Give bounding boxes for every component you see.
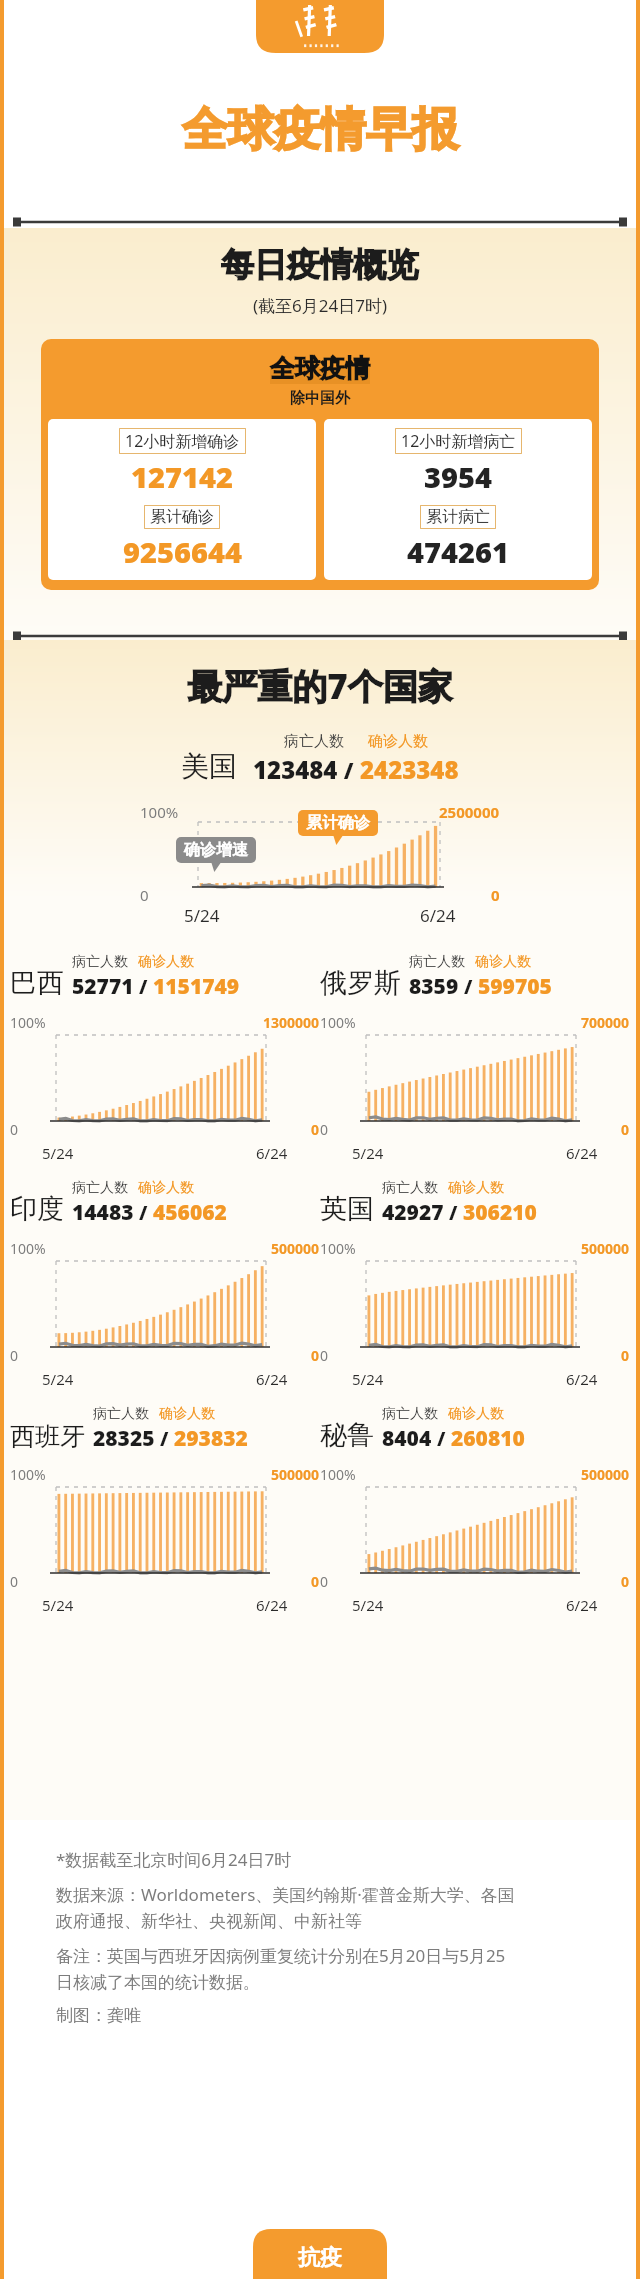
staticText: 3954 xyxy=(424,457,492,496)
staticText: 5/24 xyxy=(42,1595,74,1615)
staticText: / xyxy=(338,755,360,785)
staticText: 病亡人数 xyxy=(382,1405,438,1423)
staticText: 病亡人数 xyxy=(72,1179,128,1197)
staticText: / xyxy=(134,1200,153,1226)
staticText: 0 xyxy=(621,1120,630,1139)
staticText: 西班牙 xyxy=(10,1421,85,1452)
button[interactable]: 英国 xyxy=(320,1179,630,1389)
staticText: 500000 xyxy=(581,1465,630,1484)
staticText: 0 xyxy=(311,1120,320,1139)
staticText: 0 xyxy=(320,1572,329,1591)
staticText: 病亡人数 xyxy=(72,953,128,971)
staticText: 0 xyxy=(311,1346,320,1365)
staticText: 100% xyxy=(10,1013,46,1032)
staticText: 5/24 xyxy=(352,1369,384,1389)
staticText: 英国 xyxy=(320,1192,374,1226)
staticText: 确诊人数 xyxy=(448,1179,504,1197)
staticText: 病亡人数 xyxy=(284,732,344,751)
staticText: *数据截至北京时间6月24日7时 xyxy=(56,1848,292,1871)
staticText: 0 xyxy=(320,1120,329,1139)
staticText: 6/24 xyxy=(256,1143,288,1163)
staticText: 2500000 xyxy=(439,802,500,822)
staticText: 100% xyxy=(320,1465,356,1484)
staticText: 474261 xyxy=(407,532,509,571)
staticText: 8404 xyxy=(382,1424,432,1453)
staticText: 巴西 xyxy=(10,966,64,1000)
staticText: 0 xyxy=(621,1572,630,1591)
staticText: 美国 xyxy=(181,749,237,784)
staticText: 制图：龚唯 xyxy=(56,2005,141,2026)
staticText: 500000 xyxy=(581,1239,630,1258)
staticText: 1151749 xyxy=(153,972,240,1001)
staticText: 42927 xyxy=(382,1198,444,1227)
staticText: 每日疫情概览 xyxy=(0,244,640,286)
staticText: 6/24 xyxy=(420,904,456,927)
button[interactable]: The Paper logo xyxy=(256,0,384,53)
button[interactable]: 12小时新增病亡 xyxy=(324,419,592,580)
staticText: 0 xyxy=(311,1572,320,1591)
staticText: 5/24 xyxy=(42,1369,74,1389)
staticText: 293832 xyxy=(174,1424,248,1453)
staticText: 累计病亡 xyxy=(426,507,490,527)
button[interactable]: 秘鲁 xyxy=(320,1405,630,1615)
staticText: 5/24 xyxy=(184,904,220,927)
staticText: 500000 xyxy=(271,1465,320,1484)
staticText: 5/24 xyxy=(42,1143,74,1163)
staticText: 0 xyxy=(10,1120,19,1139)
staticText: 100% xyxy=(10,1239,46,1258)
staticText: 28325 xyxy=(93,1424,155,1453)
staticText: 病亡人数 xyxy=(409,953,465,971)
staticText: 印度 xyxy=(10,1192,64,1226)
staticText: 6/24 xyxy=(256,1369,288,1389)
staticText: 12小时新增病亡 xyxy=(401,430,516,452)
staticText: 确诊人数 xyxy=(138,1179,194,1197)
staticText: 病亡人数 xyxy=(382,1179,438,1197)
staticText: 6/24 xyxy=(256,1595,288,1615)
staticText: / xyxy=(134,974,153,1000)
staticText: 6/24 xyxy=(566,1143,598,1163)
staticText: / xyxy=(444,1200,463,1226)
staticText: 306210 xyxy=(463,1198,537,1227)
staticText: 全球疫情 xyxy=(270,353,370,384)
staticText: 456062 xyxy=(153,1198,227,1227)
staticText: 123484 xyxy=(253,753,338,786)
staticText: / xyxy=(155,1426,174,1452)
staticText: 52771 xyxy=(72,972,134,1001)
staticText: 0 xyxy=(10,1572,19,1591)
staticText: 数据来源：Worldometers、美国约翰斯·霍普金斯大学、各国 政府通报、新… xyxy=(56,1883,515,1932)
staticText: 0 xyxy=(491,885,500,905)
staticText: 累计确诊 xyxy=(150,507,214,527)
button[interactable]: 抗疫 xyxy=(253,2229,387,2279)
button[interactable]: 12小时新增确诊 xyxy=(48,419,316,580)
staticText: 0 xyxy=(320,1346,329,1365)
staticText: 抗疫 xyxy=(298,2244,342,2272)
staticText: 127142 xyxy=(131,457,233,496)
staticText: 8359 xyxy=(409,972,459,1001)
button[interactable]: 印度 xyxy=(10,1179,320,1389)
staticText: / xyxy=(432,1426,451,1452)
staticText: 100% xyxy=(10,1465,46,1484)
staticText: 6/24 xyxy=(566,1369,598,1389)
staticText: 确诊人数 xyxy=(138,953,194,971)
staticText: 秘鲁 xyxy=(320,1418,374,1452)
staticText: 最严重的7个国家 xyxy=(0,662,640,710)
staticText: 确诊人数 xyxy=(475,953,531,971)
staticText: 0 xyxy=(10,1346,19,1365)
button[interactable]: 俄罗斯 xyxy=(320,953,630,1163)
staticText: 0 xyxy=(621,1346,630,1365)
staticText: 确诊人数 xyxy=(368,732,428,751)
staticText: 100% xyxy=(320,1239,356,1258)
staticText: 病亡人数 xyxy=(93,1405,149,1423)
staticText: 备注：英国与西班牙因病例重复统计分别在5月20日与5月25 日核减了本国的统计数… xyxy=(56,1944,506,1993)
staticText: 0 xyxy=(140,885,149,905)
staticText: 700000 xyxy=(581,1013,630,1032)
staticText: (截至6月24日7时) xyxy=(0,294,640,317)
staticText: / xyxy=(459,974,478,1000)
button[interactable]: 巴西 xyxy=(10,953,320,1163)
staticText: 1300000 xyxy=(263,1013,320,1032)
staticText: 5/24 xyxy=(352,1595,384,1615)
staticText: 俄罗斯 xyxy=(320,966,401,1000)
button[interactable]: 西班牙 xyxy=(10,1405,320,1615)
button[interactable]: 全球疫情 xyxy=(41,339,599,590)
staticText: 260810 xyxy=(451,1424,525,1453)
